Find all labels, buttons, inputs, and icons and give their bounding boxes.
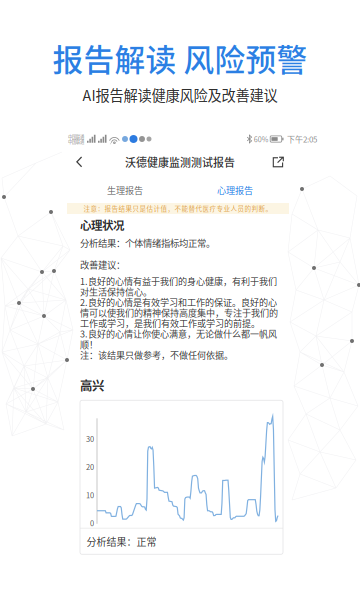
- staticText: 心理状况: [80, 218, 124, 231]
- staticText: 分析结果：正常: [86, 536, 156, 547]
- staticText: AI报告解读健康风险及改善建议: [82, 86, 277, 103]
- staticText: 生理报告: [107, 185, 143, 195]
- staticText: 报告解读 风险预警: [52, 40, 307, 75]
- staticText: 下午2:05: [287, 134, 317, 144]
- button[interactable]: 心理报告: [180, 184, 290, 196]
- staticText: 中国联通: [68, 139, 84, 144]
- staticText: 1.良好的心情有益于我们的身心健康，有利于我们对生活保持信心。: [80, 276, 277, 297]
- button[interactable]: 返回: [0, 154, 97, 170]
- staticText: 60%: [254, 135, 269, 143]
- staticText: 分析结果：个体情绪指标均正常。: [80, 237, 215, 248]
- staticText: 20: [86, 462, 94, 471]
- staticText: 沃德健康监测测试报告: [125, 156, 235, 168]
- staticText: 注意：报告结果只是估计值，不能替代医疗专业人员的判断。: [83, 205, 272, 212]
- staticText: 心理报告: [217, 185, 253, 195]
- staticText: 高兴: [80, 378, 104, 392]
- button[interactable]: 分享: [258, 154, 360, 170]
- staticText: 2.良好的心情是有效学习和工作的保证。良好的心情可以使我们的精神保持高度集中，专…: [80, 297, 278, 328]
- staticText: 注：该结果只做参考，不做任何依据。: [80, 349, 233, 360]
- staticText: 30: [86, 434, 94, 443]
- staticText: 10: [86, 491, 94, 499]
- staticText: 0: [90, 519, 94, 527]
- staticText: 3.良好的心情让你使心满意，无论做什么都一帆风顺！: [80, 328, 277, 349]
- staticText: 中国联通: [68, 134, 84, 139]
- button[interactable]: 生理报告: [70, 184, 180, 196]
- staticText: 改善建议：: [80, 259, 125, 270]
